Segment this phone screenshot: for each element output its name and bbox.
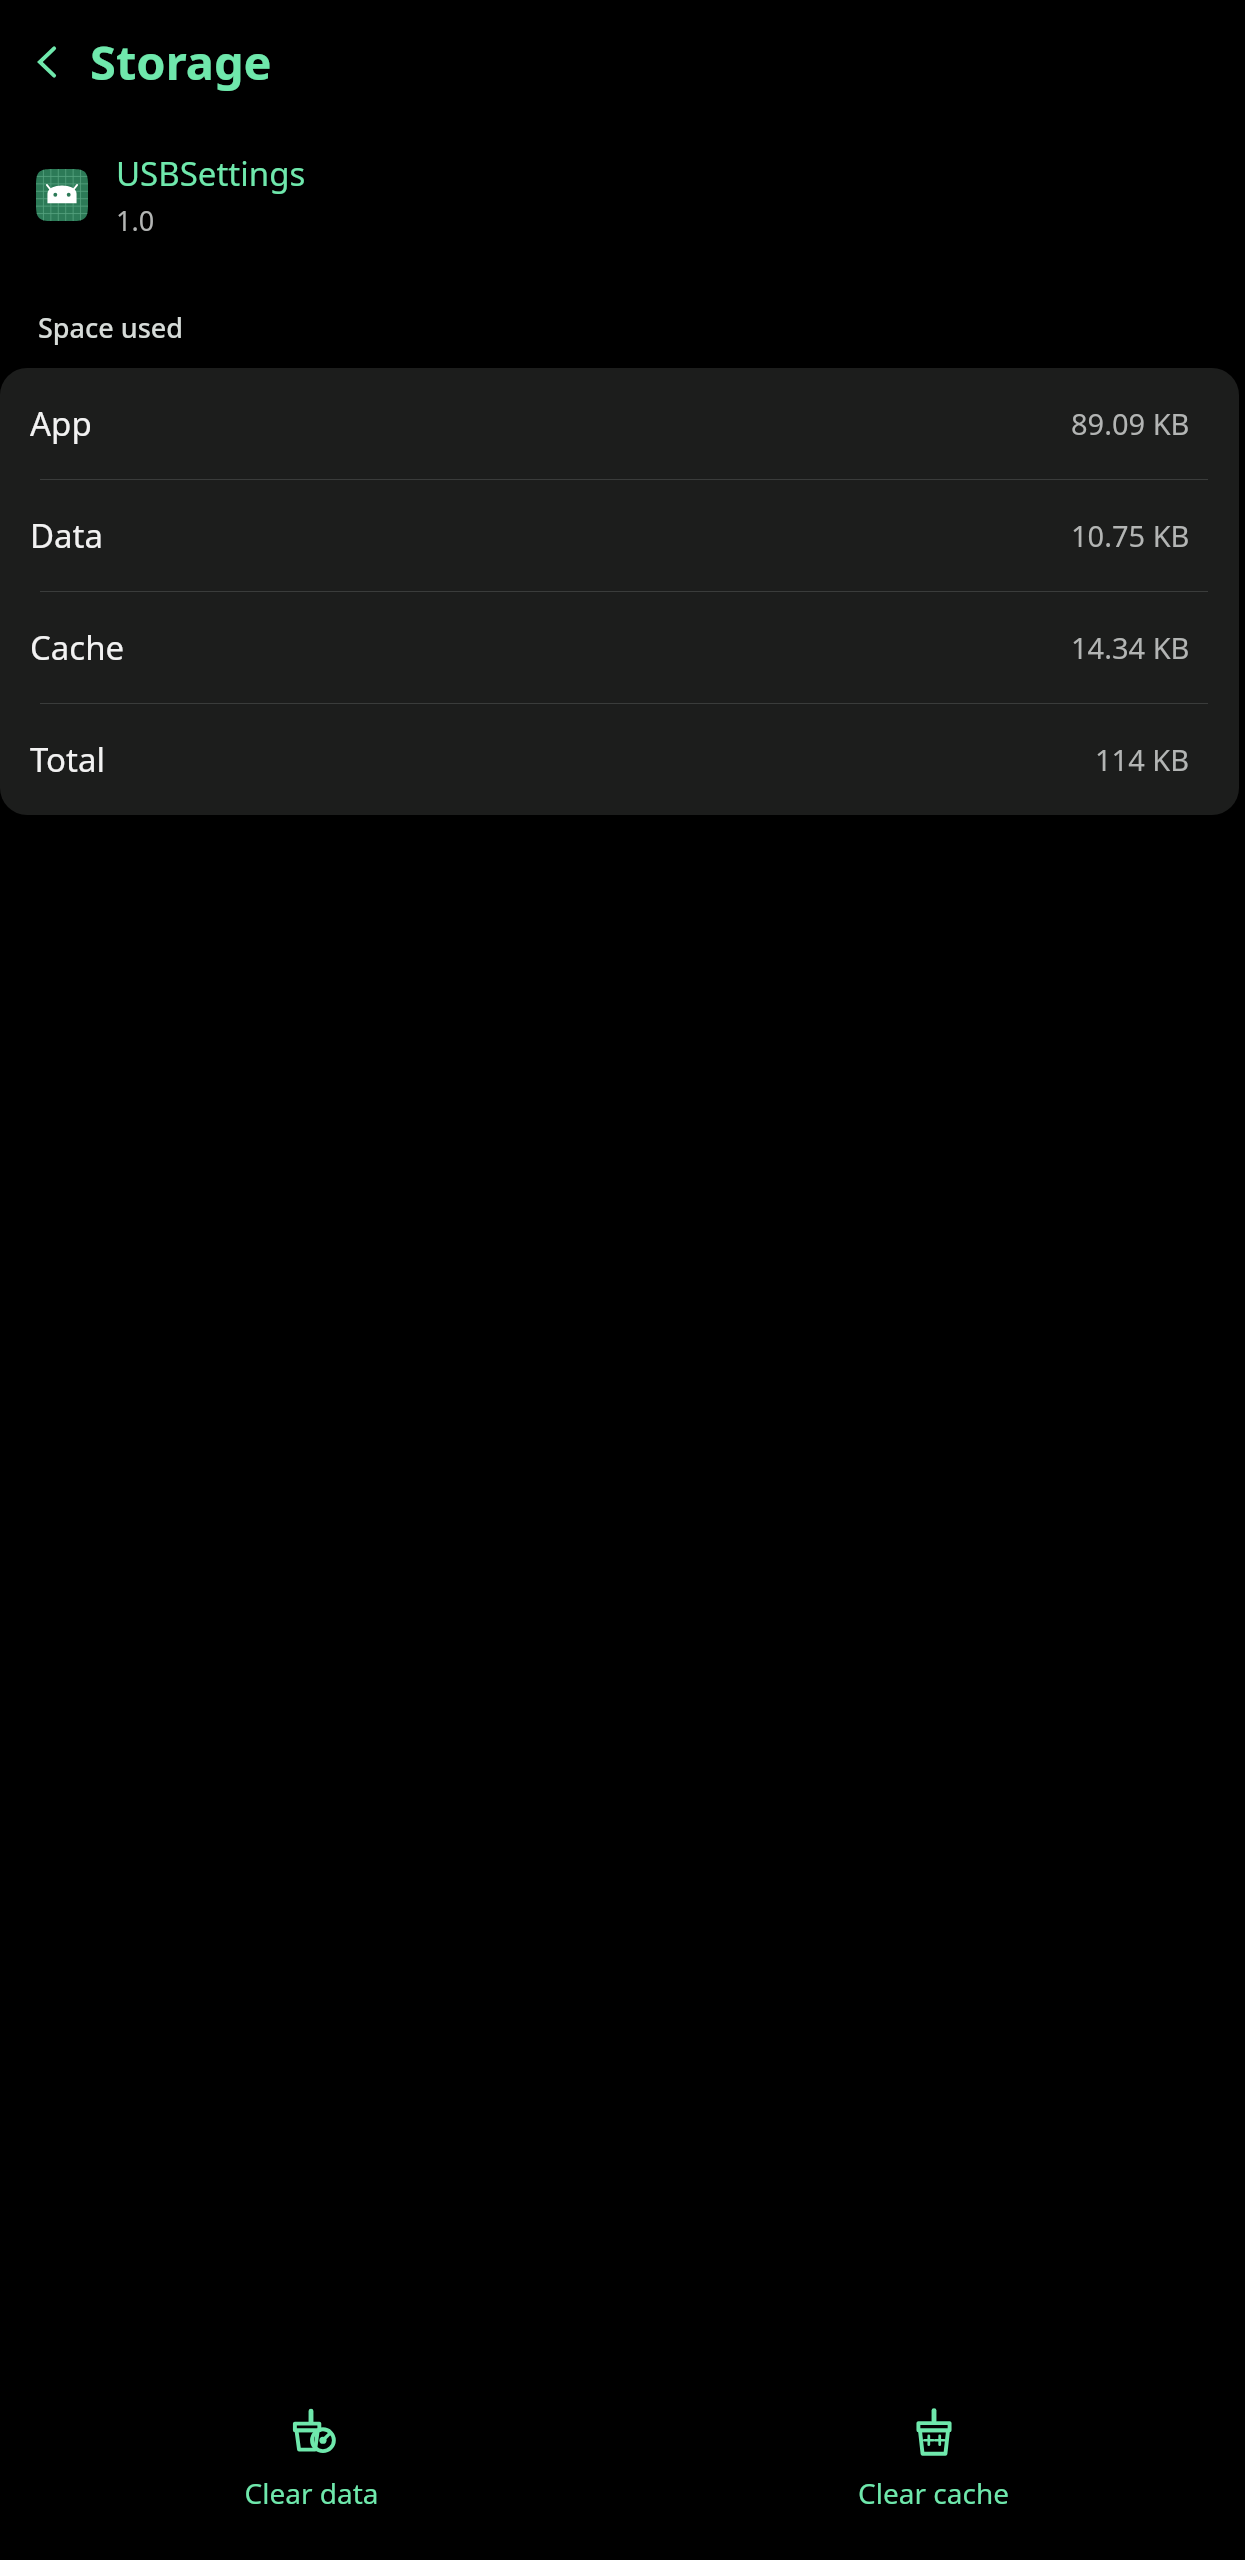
button[interactable]: Data xyxy=(0,480,1239,591)
staticText: 89.09 KB xyxy=(1071,404,1190,443)
button[interactable]: App xyxy=(0,368,1239,479)
staticText: Clear cache xyxy=(858,2474,1009,2512)
button[interactable]: Back xyxy=(20,34,76,90)
staticText: Total xyxy=(30,737,105,782)
staticText: 14.34 KB xyxy=(1071,628,1190,667)
staticText: Storage xyxy=(90,30,272,94)
staticText: Cache xyxy=(30,625,125,670)
staticText: USBSettings xyxy=(116,151,306,196)
button[interactable]: Total xyxy=(0,704,1239,815)
staticText: Clear data xyxy=(244,2474,379,2512)
staticText: Space used xyxy=(38,309,184,346)
staticText: App xyxy=(30,401,92,446)
staticText: 10.75 KB xyxy=(1071,516,1190,555)
button[interactable]: Cache xyxy=(0,592,1239,703)
staticText: Data xyxy=(30,513,104,558)
staticText: 114 KB xyxy=(1095,740,1190,779)
button[interactable]: Clear cache xyxy=(622,2396,1245,2524)
button[interactable]: Clear data xyxy=(0,2396,622,2524)
staticText: 1.0 xyxy=(116,202,155,239)
